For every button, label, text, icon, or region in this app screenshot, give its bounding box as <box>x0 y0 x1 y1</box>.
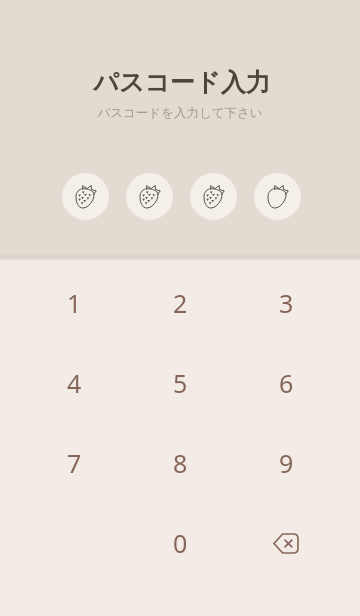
button[interactable]: 3 <box>233 263 339 343</box>
staticText: 4 <box>67 366 82 400</box>
button[interactable]: 8 <box>127 423 233 503</box>
staticText: 3 <box>279 286 294 320</box>
staticText: 6 <box>279 366 294 400</box>
staticText: 9 <box>279 446 294 480</box>
staticText: 2 <box>173 286 188 320</box>
other: Backspace <box>274 534 298 553</box>
button[interactable]: 0 <box>127 503 233 583</box>
staticText: パスコードを入力して下さい <box>97 105 263 121</box>
staticText: 0 <box>173 526 188 560</box>
button[interactable]: 9 <box>233 423 339 503</box>
button[interactable]: Backspace <box>233 503 339 583</box>
button[interactable]: 1 <box>21 263 127 343</box>
staticText: 1 <box>67 286 82 320</box>
staticText: 5 <box>173 366 188 400</box>
button[interactable]: 5 <box>127 343 233 423</box>
button[interactable]: 7 <box>21 423 127 503</box>
staticText: 8 <box>173 446 188 480</box>
staticText: パスコード入力 <box>93 67 271 98</box>
button[interactable]: 4 <box>21 343 127 423</box>
button[interactable]: 2 <box>127 263 233 343</box>
button[interactable]: 6 <box>233 343 339 423</box>
staticText: 7 <box>67 446 82 480</box>
